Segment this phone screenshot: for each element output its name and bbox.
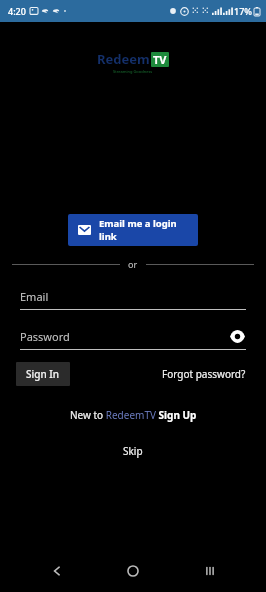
- button[interactable]: Home: [113, 551, 153, 591]
- staticText: Skip: [123, 444, 143, 458]
- button[interactable]: Show password: [228, 327, 246, 345]
- button[interactable]: Recent apps: [190, 551, 230, 591]
- button[interactable]: Email me a login link: [68, 214, 198, 246]
- button[interactable]: Skip: [113, 440, 153, 462]
- staticText: Streaming Goodness: [113, 69, 153, 74]
- button[interactable]: Forgot password?: [158, 363, 250, 385]
- staticText: Email me a login link: [99, 217, 188, 243]
- button[interactable]: Sign In: [16, 362, 70, 386]
- button[interactable]: Email: [20, 286, 246, 310]
- staticText: Email: [20, 289, 246, 304]
- staticText: 17%: [234, 5, 252, 17]
- staticText: TV: [153, 52, 167, 67]
- staticText: Redeem: [97, 50, 150, 68]
- staticText: Forgot password?: [162, 367, 246, 381]
- staticText: or: [128, 258, 138, 270]
- button[interactable]: New to RedeemTV Sign Up: [66, 404, 201, 426]
- staticText: Sign In: [26, 367, 60, 381]
- staticText: Password: [20, 329, 228, 344]
- button[interactable]: Back: [37, 551, 77, 591]
- staticText: 4:20: [8, 5, 26, 17]
- button[interactable]: Password: [20, 326, 246, 350]
- staticText: New to RedeemTV Sign Up: [70, 408, 197, 422]
